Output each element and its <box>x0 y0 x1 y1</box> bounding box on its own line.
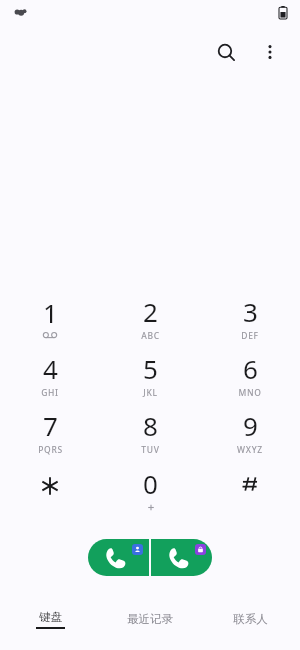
button[interactable]: 1 <box>0 289 100 346</box>
staticText: 5 <box>143 351 158 386</box>
button[interactable] <box>0 460 100 517</box>
staticText: TUV <box>141 444 160 456</box>
button[interactable]: Call with SIM 2 <box>151 539 212 576</box>
staticText: MNO <box>238 387 262 399</box>
staticText: 7 <box>43 408 58 443</box>
button[interactable]: 5 <box>100 346 200 403</box>
staticText: DEF <box>241 330 259 342</box>
staticText: 0 <box>143 466 158 501</box>
button[interactable]: Call with SIM 1 <box>88 539 149 576</box>
staticText: PQRS <box>38 444 63 456</box>
button[interactable]: 0 <box>100 460 200 517</box>
staticText: 3 <box>243 294 258 329</box>
staticText: 最近记录 <box>127 612 173 626</box>
staticText: JKL <box>143 387 158 399</box>
staticText: 6 <box>243 351 258 386</box>
button[interactable]: 联系人 <box>200 602 300 636</box>
button[interactable]: 4 <box>0 346 100 403</box>
staticText: 1 <box>43 295 58 330</box>
button[interactable]: 2 <box>100 289 200 346</box>
staticText: 联系人 <box>233 612 268 626</box>
button[interactable]: 7 <box>0 403 100 460</box>
button[interactable]: 键盘 <box>0 602 100 636</box>
button[interactable]: 8 <box>100 403 200 460</box>
staticText: 8 <box>143 408 158 443</box>
button[interactable]: More options <box>248 30 292 74</box>
staticText: 4 <box>43 351 58 386</box>
staticText: ABC <box>141 330 160 342</box>
button[interactable]: 最近记录 <box>100 602 200 636</box>
staticText: 2 <box>143 294 158 329</box>
button[interactable] <box>200 460 300 517</box>
button[interactable]: Search <box>204 30 248 74</box>
button[interactable]: 6 <box>200 346 300 403</box>
staticText: WXYZ <box>237 444 263 456</box>
staticText: GHI <box>41 387 59 399</box>
button[interactable]: 3 <box>200 289 300 346</box>
staticText: 键盘 <box>39 610 62 624</box>
button[interactable]: 9 <box>200 403 300 460</box>
staticText: 9 <box>243 408 258 443</box>
